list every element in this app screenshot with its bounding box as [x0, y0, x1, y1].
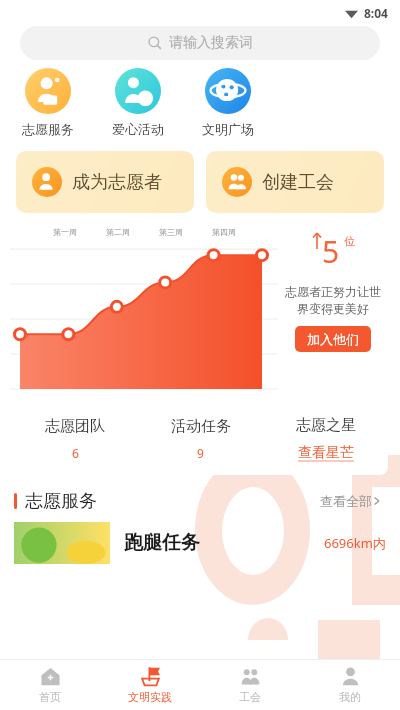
button[interactable]: 志愿服务 [22, 68, 74, 137]
button[interactable]: 文明实践 [100, 660, 200, 710]
button[interactable]: 首页 [0, 660, 100, 710]
staticText: 查看星芒 [298, 444, 354, 462]
staticText: 文明广场 [202, 121, 254, 137]
staticText: 志愿服务 [22, 121, 74, 137]
button[interactable]: 加入他们 [295, 326, 371, 352]
staticText: 首页 [39, 690, 61, 704]
staticText: 志愿服务 [25, 490, 97, 513]
button[interactable]: 我的 [300, 660, 400, 710]
button[interactable]: 工会 [200, 660, 300, 710]
staticText: 位 [344, 234, 355, 248]
button[interactable]: 请输入搜索词 [20, 26, 380, 60]
button[interactable]: 跑腿任务 [14, 519, 386, 567]
staticText: 第三周 [159, 227, 183, 237]
staticText: 文明实践 [128, 690, 172, 704]
staticText: 跑腿任务 [124, 531, 200, 555]
staticText: 第一周 [53, 227, 77, 237]
staticText: 6 [72, 445, 79, 461]
staticText: 爱心活动 [112, 121, 164, 137]
staticText: 志愿团队 [45, 417, 105, 436]
button[interactable]: 爱心活动 [112, 68, 164, 137]
staticText: 查看全部 [320, 493, 372, 509]
button[interactable]: 活动任务 [138, 403, 263, 475]
staticText: 第四周 [212, 227, 236, 237]
staticText: 成为志愿者 [72, 171, 162, 194]
staticText: 志愿之星 [296, 416, 356, 435]
staticText: 创建工会 [262, 171, 334, 194]
staticText: 8:04 [364, 5, 388, 21]
staticText: 请输入搜索词 [169, 34, 253, 52]
button[interactable]: 志愿之星 [263, 403, 388, 475]
button[interactable]: 文明广场 [202, 68, 254, 137]
button[interactable]: 创建工会 [206, 151, 384, 213]
button[interactable]: 查看全部 [316, 489, 386, 513]
staticText: 加入他们 [307, 331, 359, 347]
staticText: 6696km内 [324, 534, 386, 552]
button[interactable]: 志愿团队 [12, 403, 138, 475]
staticText: 志愿者正努力让世界变得更美好 [280, 284, 386, 316]
staticText: 5 [322, 231, 340, 272]
staticText: 我的 [339, 690, 361, 704]
staticText: 工会 [239, 690, 261, 704]
staticText: 第二周 [106, 227, 130, 237]
staticText: 活动任务 [171, 417, 231, 436]
staticText: 9 [197, 445, 204, 461]
button[interactable]: 成为志愿者 [16, 151, 194, 213]
